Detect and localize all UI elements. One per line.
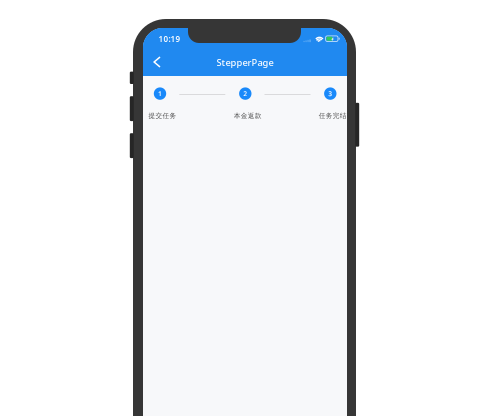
staticText: 1 (158, 89, 162, 98)
staticText: 3 (328, 89, 332, 98)
staticText: StepperPage (216, 56, 273, 69)
staticText: 提交任务 (148, 112, 176, 120)
staticText: 本金返款 (234, 112, 262, 120)
button[interactable]: Back (143, 49, 169, 75)
staticText: 任务完结 (319, 112, 347, 120)
staticText: 2 (243, 89, 247, 98)
staticText: 10:19 (158, 33, 180, 44)
